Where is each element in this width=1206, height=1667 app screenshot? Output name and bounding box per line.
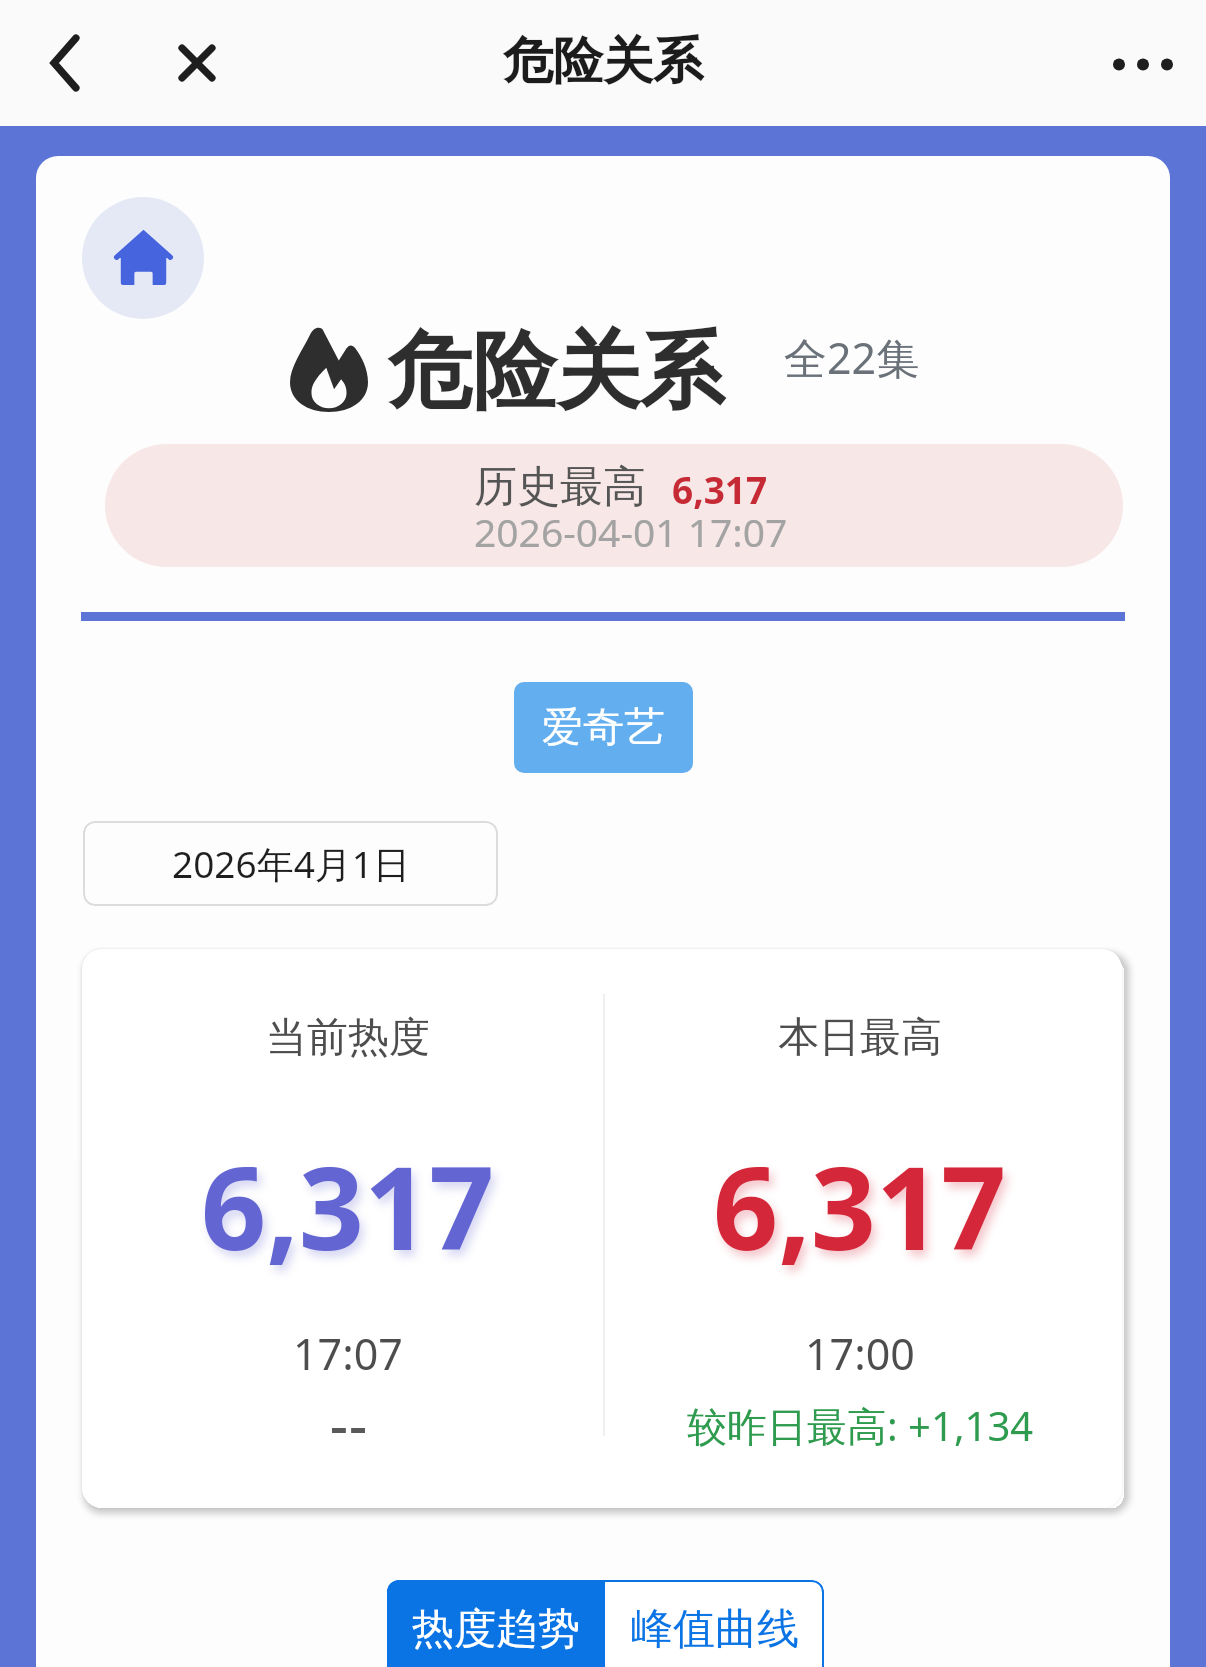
staticText: 2026-04-01 17:07 (474, 505, 788, 558)
staticText: 6,317 (713, 1128, 1007, 1283)
staticText: 本日最高 (778, 1012, 942, 1064)
staticText: 全22集 (784, 328, 920, 387)
staticText: 危险关系 (503, 30, 703, 93)
staticText: 较昨日最高: +1,134 (687, 1398, 1034, 1453)
staticText: 17:00 (805, 1324, 915, 1383)
staticText: 17:07 (293, 1324, 403, 1383)
staticText: 峰值曲线 (631, 1603, 799, 1656)
staticText: 6,317 (672, 464, 768, 514)
staticText: 热度趋势 (412, 1603, 580, 1656)
button[interactable]: Back (29, 27, 101, 99)
button[interactable]: 热度趋势 (387, 1580, 605, 1667)
staticText: 6,317 (201, 1128, 495, 1283)
staticText: 历史最高 (474, 460, 646, 514)
button[interactable]: More options (1098, 19, 1188, 109)
staticText: 爱奇艺 (542, 702, 665, 754)
staticText: 危险关系 (388, 319, 724, 425)
button[interactable]: Home (82, 197, 204, 319)
button[interactable]: 爱奇艺 (514, 682, 693, 773)
staticText: 当前热度 (266, 1012, 430, 1064)
button[interactable]: 2026年4月1日 (83, 821, 498, 906)
button[interactable]: 峰值曲线 (605, 1580, 824, 1667)
staticText: 2026年4月1日 (172, 838, 410, 889)
button[interactable]: Close (161, 27, 233, 99)
